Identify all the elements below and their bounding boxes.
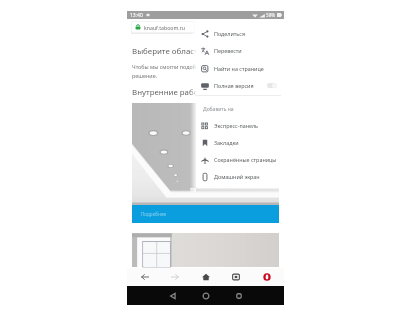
staticText: Добавить на xyxy=(203,106,234,113)
button[interactable]: Home xyxy=(193,268,219,286)
button[interactable]: Закладки xyxy=(196,134,281,151)
staticText: Поделиться xyxy=(214,30,246,37)
button[interactable]: Поделиться xyxy=(196,25,281,42)
button[interactable]: Back xyxy=(132,268,158,286)
staticText: Найти на странице xyxy=(214,65,264,72)
staticText: 58% xyxy=(266,12,276,18)
button[interactable]: Forward xyxy=(162,268,188,286)
staticText: Перевести xyxy=(214,47,242,54)
staticText: решение. xyxy=(132,72,158,79)
staticText: Выберите область xyxy=(132,46,203,57)
staticText: Полная версия xyxy=(214,82,254,89)
button[interactable]: Домашний экран xyxy=(196,168,281,185)
button[interactable]: Перевести xyxy=(196,42,281,59)
staticText: 13:40 xyxy=(130,12,143,19)
staticText: Внутренние работы xyxy=(132,87,208,98)
button[interactable]: Подробнее xyxy=(132,205,279,223)
button[interactable]: Back xyxy=(163,286,183,305)
button[interactable]: Opera menu xyxy=(254,268,280,286)
button[interactable]: Сохранённые страницы xyxy=(196,151,281,168)
button[interactable]: Recent apps xyxy=(229,286,249,305)
staticText: Домашний экран xyxy=(214,173,260,180)
button[interactable]: Home xyxy=(196,286,216,305)
button[interactable]: Полная версия xyxy=(196,77,281,94)
button[interactable]: Tabs xyxy=(223,268,249,286)
staticText: knauf.taboom.ru xyxy=(144,24,186,31)
button[interactable]: Экспресс-панель xyxy=(196,117,281,134)
button[interactable]: Найти на странице xyxy=(196,60,281,77)
staticText: Чтобы мы смогли подобрать xyxy=(132,63,208,70)
staticText: Сохранённые страницы xyxy=(214,156,277,163)
staticText: Экспресс-панель xyxy=(214,122,259,129)
staticText: Подробнее xyxy=(141,211,166,217)
button[interactable]: knauf.taboom.ru xyxy=(131,21,195,33)
staticText: Закладки xyxy=(214,139,239,146)
